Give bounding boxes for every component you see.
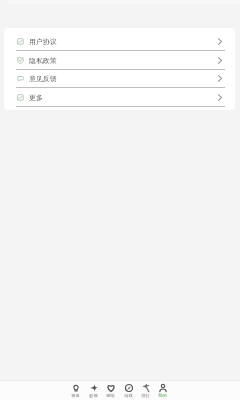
staticText: 隐私政策 [29, 56, 57, 65]
button[interactable]: 我的 [154, 383, 171, 399]
staticText: 用户协议 [29, 37, 57, 46]
button[interactable]: 神器 [67, 383, 84, 399]
button[interactable]: 排行 [137, 383, 154, 399]
staticText: 排行 [141, 393, 150, 398]
staticText: 意见反馈 [29, 74, 57, 83]
button[interactable]: 隐私政策 [4, 51, 235, 70]
staticText: 更多 [29, 93, 43, 102]
button[interactable]: 用户协议 [4, 32, 235, 51]
button[interactable]: 壁纸 [102, 383, 119, 399]
staticText: 游戏 [124, 393, 133, 398]
button[interactable]: 游戏 [120, 383, 137, 399]
staticText: 神器 [71, 393, 80, 398]
staticText: 壁纸 [106, 393, 115, 398]
button[interactable]: 影视 [85, 383, 102, 399]
staticText: 我的 [158, 393, 167, 398]
button[interactable]: 意见反馈 [4, 69, 235, 88]
staticText: 影视 [89, 393, 98, 398]
button[interactable]: 更多 [4, 88, 235, 107]
